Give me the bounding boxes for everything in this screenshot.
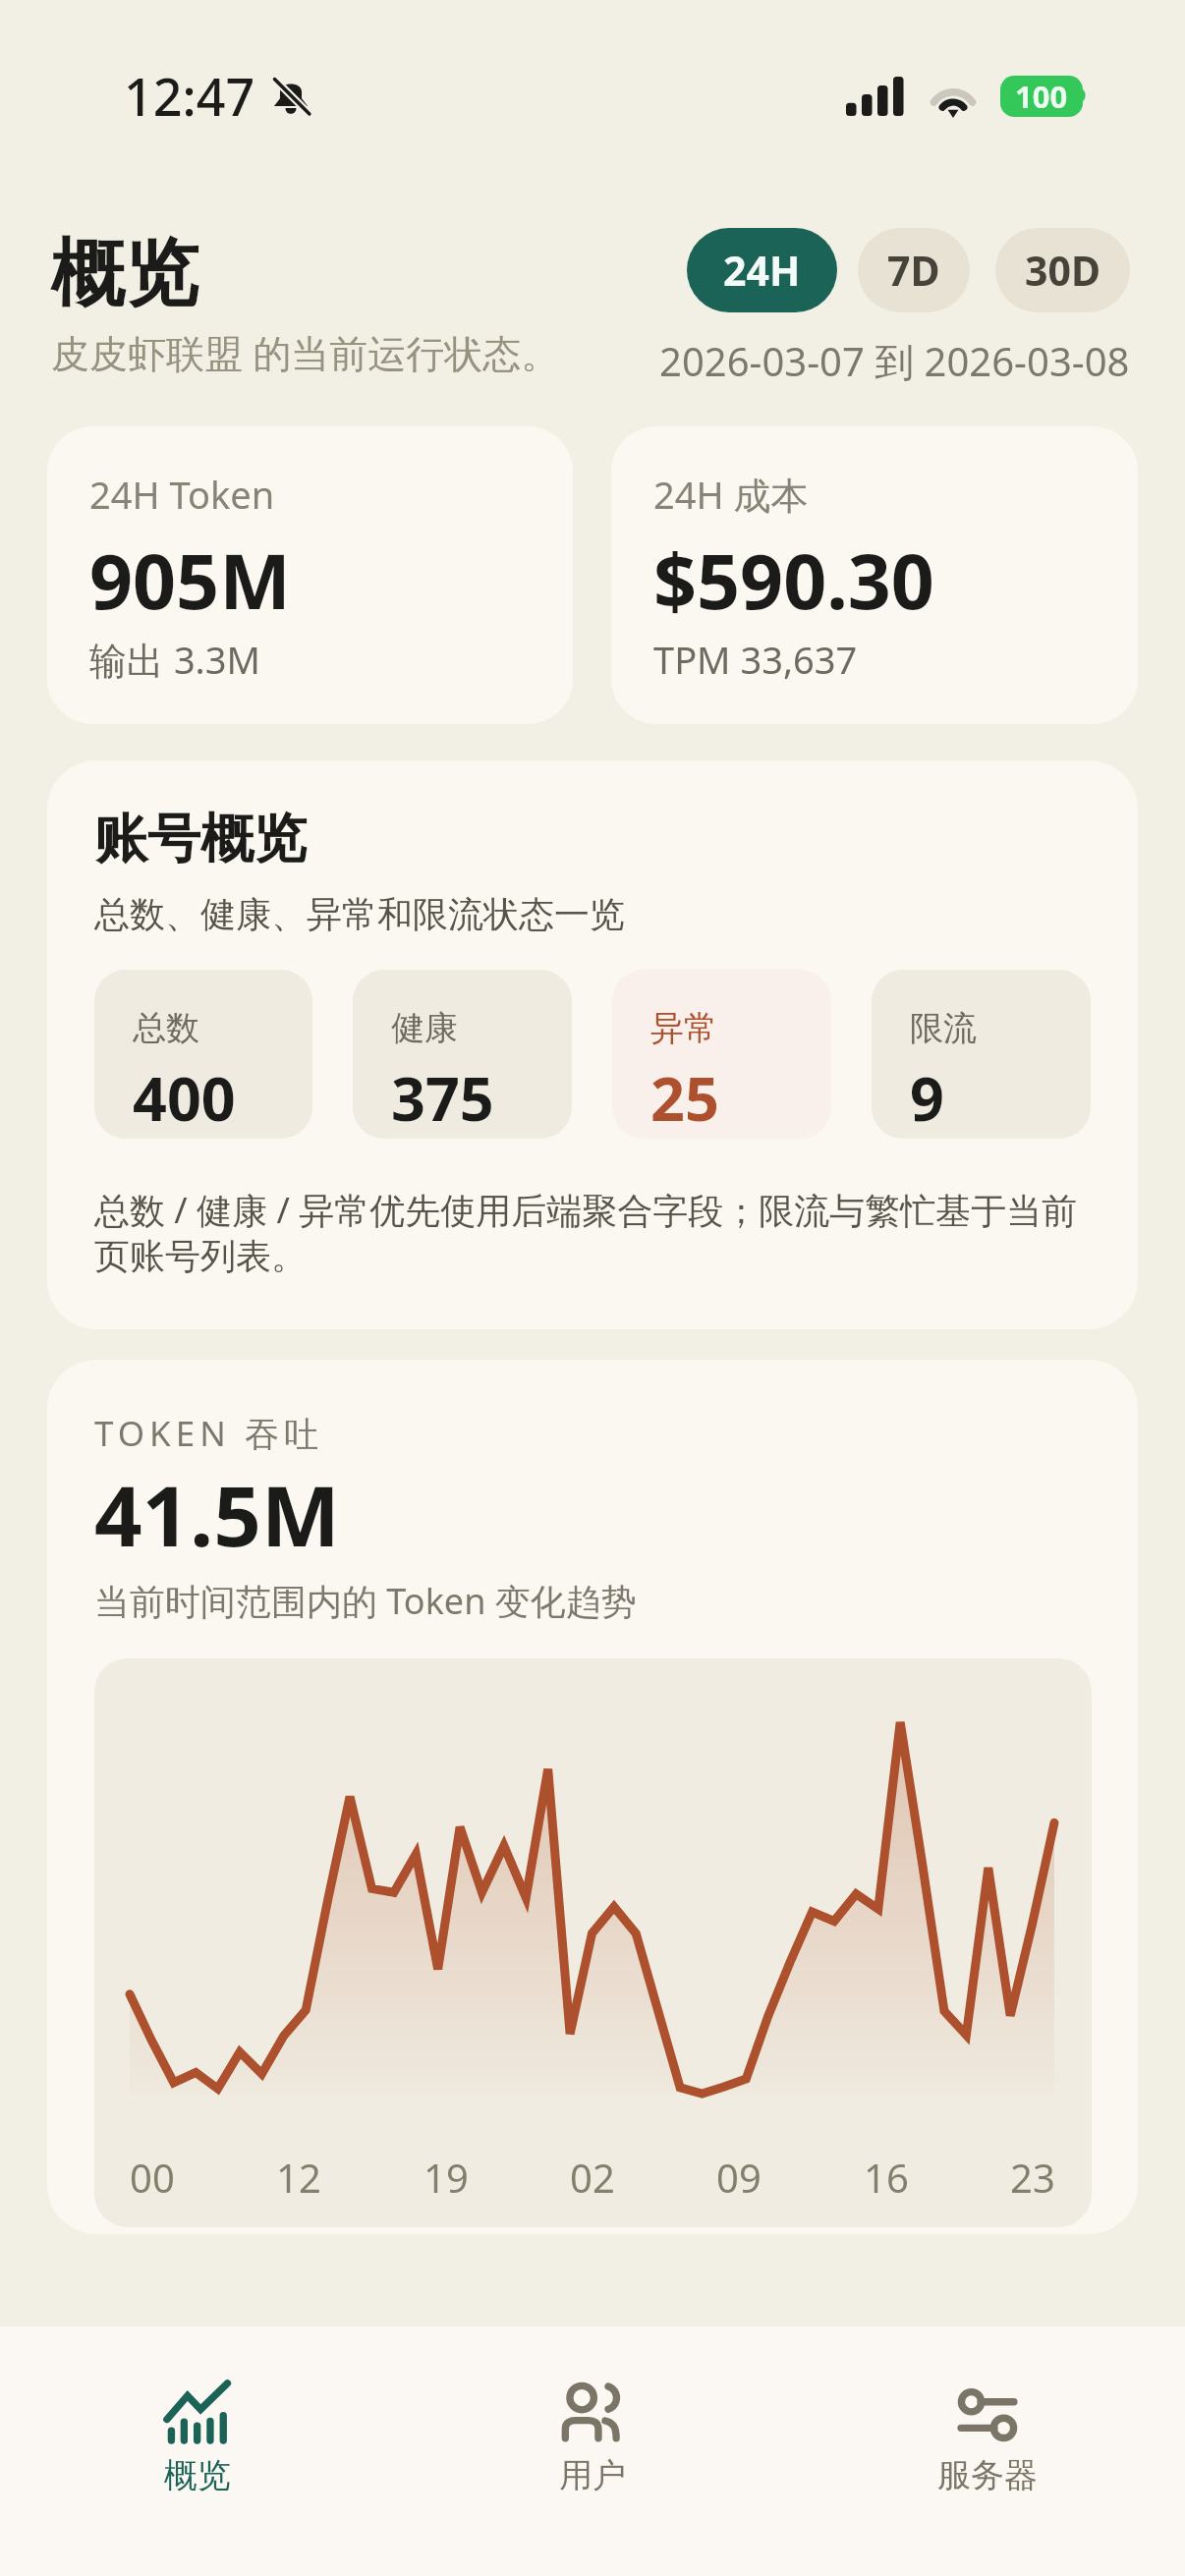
button[interactable]: Overview [0,2326,395,2576]
staticText: 905M [89,529,291,632]
staticText: 健康 [391,1007,458,1049]
staticText: 12:47 [124,61,255,131]
staticText: 2026-03-07 到 2026-03-08 [659,334,1130,388]
button[interactable]: 30D [995,228,1130,312]
staticText: $590.30 [653,529,934,632]
staticText: 输出 3.3M [89,634,261,685]
button[interactable]: 异常 [612,970,831,1139]
staticText: 100 [1015,76,1068,117]
staticText: 概览 [51,228,198,320]
staticText: 41.5M [94,1457,340,1571]
staticText: 服务器 [937,2454,1038,2496]
staticText: 概览 [164,2454,231,2496]
button[interactable]: 总数 [94,970,312,1139]
button[interactable]: 健康 [353,970,572,1139]
staticText: 30D [1025,243,1100,298]
button[interactable]: Users [395,2326,790,2576]
staticText: 账号概览 [94,806,307,872]
staticText: 09 [716,2151,762,2204]
staticText: TPM 33,637 [653,634,858,685]
staticText: 7D [887,243,940,298]
staticText: 24H 成本 [653,469,809,520]
staticText: 25 [650,1057,719,1139]
staticText: 19 [423,2151,469,2204]
staticText: 当前时间范围内的 Token 变化趋势 [94,1577,637,1625]
button[interactable]: 限流 [872,970,1091,1139]
button[interactable]: 24H 成本 [611,426,1138,724]
staticText: 02 [570,2151,615,2204]
staticText: 9 [910,1057,944,1139]
staticText: 00 [130,2151,175,2204]
staticText: 总数、健康、异常和限流状态一览 [94,892,625,936]
staticText: TOKEN 吞吐 [94,1410,323,1457]
button[interactable]: 24H Token [47,426,573,724]
staticText: 375 [391,1057,494,1139]
staticText: 400 [133,1057,236,1139]
staticText: 总数 / 健康 / 异常优先使用后端聚合字段；限流与繁忙基于当前页账号列表。 [94,1186,1091,1279]
staticText: 24H [723,243,801,298]
staticText: 皮皮虾联盟 的当前运行状态。 [51,326,560,378]
staticText: 24H Token [89,469,275,520]
staticText: 总数 [133,1007,199,1049]
staticText: 异常 [650,1007,717,1049]
button[interactable]: Servers [790,2326,1185,2576]
staticText: 12 [276,2151,321,2204]
staticText: 用户 [559,2454,626,2496]
button[interactable]: 7D [858,228,970,312]
staticText: 23 [1010,2151,1055,2204]
staticText: 16 [864,2151,909,2204]
button[interactable]: 24H [687,228,837,312]
staticText: 限流 [910,1007,977,1049]
